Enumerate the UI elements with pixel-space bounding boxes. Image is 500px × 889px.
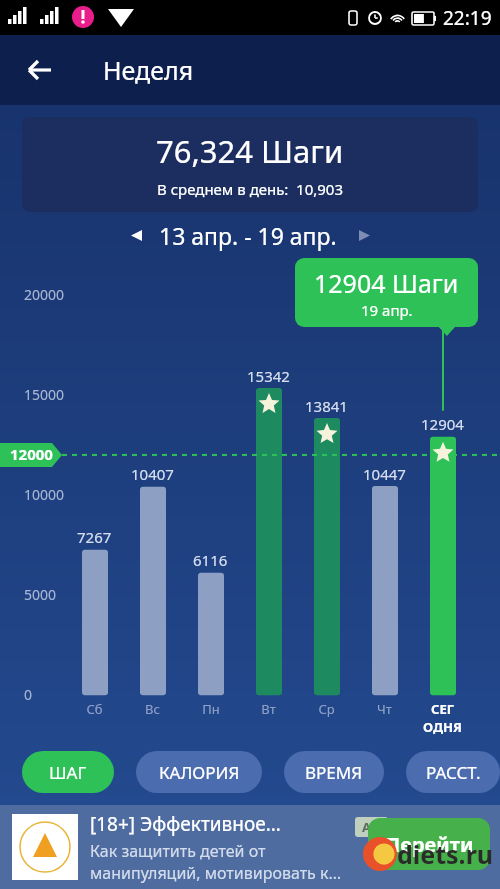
button[interactable]: ВРЕМЯ — [284, 751, 384, 793]
staticText: 10000 — [24, 485, 65, 504]
staticText: Как защитить детей от — [90, 840, 266, 862]
staticText: 76,324 Шаги — [156, 130, 344, 172]
button[interactable]: ШАГ — [22, 751, 114, 793]
staticText: В среднем в день: 10,903 — [157, 179, 343, 199]
staticText: РАССТ. — [426, 761, 481, 784]
staticText: КАЛОРИЯ — [159, 761, 240, 784]
staticText: Вт — [261, 700, 276, 718]
staticText: diets.ru — [397, 837, 494, 871]
staticText: Пн — [202, 700, 220, 718]
staticText: 6116 — [193, 550, 228, 570]
staticText: 5000 — [24, 585, 57, 604]
staticText: 13 апр. - 19 апр. — [159, 220, 337, 251]
staticText: СЕГ ОДНЯ — [423, 700, 462, 736]
staticText: Перейти — [385, 831, 474, 858]
staticText: 12904 — [421, 414, 464, 434]
staticText: 20000 — [24, 285, 65, 304]
staticText: 22:19 — [443, 5, 492, 31]
staticText: манипуляций, мотивировать к… — [90, 862, 342, 884]
staticText: Ср — [318, 700, 335, 718]
button[interactable]: Назад — [18, 48, 62, 92]
button[interactable]: РАССТ. — [406, 751, 500, 793]
staticText: 12904 Шаги — [314, 266, 459, 300]
staticText: 19 апр. — [361, 300, 413, 320]
staticText: 10407 — [131, 464, 174, 484]
button[interactable]: Следующая неделя — [347, 218, 381, 252]
staticText: 10447 — [363, 464, 406, 484]
staticText: AD — [362, 818, 381, 836]
button[interactable]: Перейти — [368, 818, 490, 870]
button[interactable]: КАЛОРИЯ — [136, 751, 262, 793]
staticText: 12000 — [10, 444, 53, 464]
staticText: Сб — [86, 700, 103, 718]
button[interactable]: [18+] Эффективное… — [0, 805, 500, 889]
staticText: Вс — [145, 700, 160, 718]
button[interactable]: 76,324 Шаги — [22, 117, 478, 212]
button[interactable]: Предыдущая неделя — [119, 218, 153, 252]
button[interactable]: 12904 Шаги — [295, 258, 478, 336]
staticText: Неделя — [103, 53, 194, 87]
staticText: ШАГ — [49, 761, 87, 784]
staticText: 15342 — [247, 366, 290, 386]
staticText: 0 — [24, 685, 33, 704]
staticText: Чт — [377, 700, 392, 718]
staticText: ВРЕМЯ — [305, 761, 363, 784]
staticText: [18+] Эффективное… — [90, 811, 281, 837]
staticText: 7267 — [77, 527, 112, 547]
staticText: 13841 — [305, 396, 348, 416]
staticText: 15000 — [24, 385, 65, 404]
